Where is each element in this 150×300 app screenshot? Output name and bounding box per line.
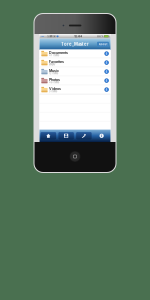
staticText: 3 items [49, 90, 57, 93]
button[interactable]: Photos [39, 76, 110, 85]
button[interactable]: About [97, 42, 109, 47]
button[interactable]: Home [39, 130, 57, 142]
staticText: Favorites [49, 59, 64, 64]
staticText: 48 items [49, 81, 59, 84]
staticText: 12:04 [74, 35, 82, 38]
staticText: Photos [49, 77, 60, 82]
button[interactable]: Music [39, 67, 110, 76]
button[interactable]: Info [93, 130, 111, 142]
staticText: 41 items [49, 54, 59, 57]
staticText: Sunrise [47, 35, 55, 38]
button[interactable]: Documents [39, 49, 110, 58]
staticText: Videos [49, 86, 61, 91]
staticText: Music [49, 68, 59, 73]
button[interactable]: Favorites [39, 58, 110, 67]
staticText: Tore_Master [61, 42, 89, 47]
staticText: Empty [49, 63, 55, 66]
staticText: Documents [49, 50, 68, 55]
button[interactable]: Videos [39, 85, 110, 94]
staticText: 86% [97, 35, 103, 38]
staticText: About [98, 43, 107, 46]
button[interactable]: Save [57, 130, 75, 142]
button[interactable]: Tools [75, 130, 93, 142]
staticText: 12 items [49, 72, 58, 75]
